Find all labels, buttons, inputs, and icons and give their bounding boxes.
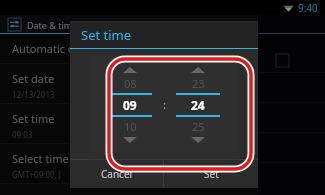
staticText: Set time [81,26,132,44]
button[interactable]: Increment [186,65,210,75]
staticText: 24 [191,97,205,113]
button[interactable]: Decrement [186,135,210,145]
staticText: GMT+09:00, J [12,169,61,180]
staticText: Date & time [27,19,78,31]
staticText: 23 [192,76,205,91]
staticText: Set [204,167,219,181]
button[interactable]: Cancel [70,160,163,188]
staticText: Automatic date & time [12,41,129,56]
staticText: 25 [192,119,205,134]
button[interactable]: Automatic date & time [0,34,258,64]
staticText: 09:03 [12,129,33,140]
staticText: 12/13/2013 [12,89,55,100]
button[interactable]: Decrement [118,135,142,145]
button[interactable]: Set [164,160,258,188]
staticText: Cancel [101,167,133,181]
staticText: Set date [12,71,55,86]
button[interactable]: Select time zone [0,144,258,184]
staticText: 08 [124,76,137,91]
staticText: Select time zone [12,151,97,166]
button[interactable]: Toggle [276,54,289,67]
staticText: 9:40 [298,1,318,15]
staticText: : [163,97,166,112]
staticText: 09 [123,97,137,113]
staticText: 10 [124,119,137,134]
staticText: Set time [12,111,55,126]
button[interactable]: Set date [0,64,258,104]
button[interactable]: Increment [118,65,142,75]
button[interactable]: Set time [0,104,258,144]
